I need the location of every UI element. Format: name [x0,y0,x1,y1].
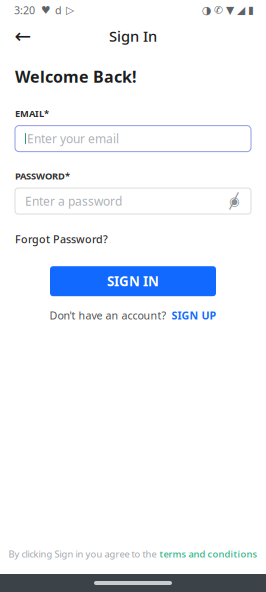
button[interactable]: terms and conditions [156,548,257,560]
staticText: ♥ [41,4,51,16]
staticText: ◉ [229,194,239,208]
staticText: ╱ [229,193,238,209]
staticText: 3:20 [14,3,35,17]
staticText: Welcome Back! [15,66,137,87]
button[interactable]: Back [6,21,40,51]
staticText: Enter a password [25,193,122,209]
staticText: ◑ [202,4,211,16]
button[interactable]: SIGN UP [166,308,216,322]
button[interactable]: Enter a password [15,188,251,214]
staticText: ✆ [214,4,223,16]
staticText: PASSWORD* [15,170,70,182]
staticText: Enter your email [27,131,119,147]
staticText: d [55,3,62,17]
staticText: By clicking Sign in you agree to the [8,548,156,560]
button[interactable]: Enter your email [15,126,251,152]
staticText: terms and conditions [159,548,257,560]
staticText: ← [14,25,31,47]
staticText: SIGN UP [171,308,216,322]
staticText: ▮ [248,4,254,16]
staticText: Sign In [109,26,157,46]
button[interactable]: SIGN IN [50,266,216,296]
button[interactable]: Forgot Password? [15,232,108,246]
staticText: Don't have an account? [49,308,166,322]
staticText: ◢ [237,4,245,16]
staticText: SIGN IN [107,272,159,290]
staticText: EMAIL* [15,107,49,120]
staticText: ▼ [226,4,234,16]
staticText: Forgot Password? [15,232,108,246]
staticText: ▷ [66,4,74,16]
